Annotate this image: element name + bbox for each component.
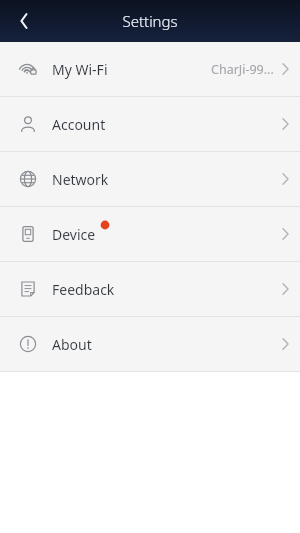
button[interactable]: Device: [0, 207, 300, 261]
button[interactable]: Feedback: [0, 262, 300, 316]
staticText: Account: [52, 115, 106, 134]
staticText: Settings: [122, 11, 178, 31]
staticText: CharJi-99...: [211, 61, 274, 78]
button[interactable]: Back: [4, 1, 44, 41]
staticText: Feedback: [52, 280, 115, 299]
staticText: About: [52, 335, 92, 354]
staticText: Device: [52, 225, 96, 244]
button[interactable]: About: [0, 317, 300, 371]
button[interactable]: Network: [0, 152, 300, 206]
button[interactable]: Account: [0, 97, 300, 151]
button[interactable]: My Wi-Fi: [0, 42, 300, 96]
staticText: Network: [52, 170, 109, 189]
staticText: My Wi-Fi: [52, 60, 108, 79]
